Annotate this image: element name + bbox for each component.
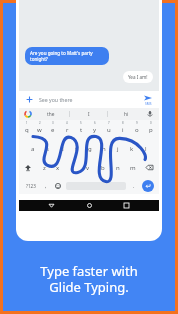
button[interactable]: f — [69, 139, 83, 158]
button[interactable]: 7 — [102, 120, 116, 139]
staticText: t — [80, 126, 83, 134]
button[interactable]: Add attachment — [24, 94, 35, 105]
staticText: 7 — [108, 121, 110, 125]
button[interactable]: Home — [84, 200, 95, 211]
button[interactable]: n — [110, 158, 125, 177]
staticText: See you there — [39, 96, 73, 103]
button[interactable]: h — [97, 139, 111, 158]
button[interactable]: . — [128, 177, 140, 194]
button[interactable]: Voice input — [145, 109, 155, 119]
button[interactable]: Emoji — [52, 177, 64, 194]
staticText: l — [145, 145, 147, 153]
button[interactable]: c — [65, 158, 80, 177]
button[interactable]: g — [83, 139, 97, 158]
button[interactable]: Google — [23, 109, 33, 119]
button[interactable]: I — [70, 108, 107, 120]
button[interactable]: hi — [108, 108, 145, 120]
button[interactable]: x — [51, 158, 65, 177]
button[interactable]: s — [40, 139, 55, 158]
button[interactable]: b — [95, 158, 110, 177]
staticText: . — [133, 182, 135, 189]
staticText: 5 — [80, 121, 82, 125]
button[interactable]: m — [125, 158, 140, 177]
staticText: d — [60, 145, 64, 153]
button[interactable]: 9 — [130, 120, 144, 139]
staticText: o — [135, 126, 139, 134]
staticText: , — [45, 182, 47, 189]
button[interactable]: k — [125, 139, 139, 158]
button[interactable]: 5 — [74, 120, 88, 139]
button[interactable]: 6 — [88, 120, 102, 139]
staticText: j — [117, 145, 119, 153]
button[interactable]: a — [25, 139, 40, 158]
staticText: w — [37, 126, 42, 134]
staticText: s — [46, 145, 49, 153]
staticText: 8 — [122, 121, 124, 125]
staticText: x — [56, 164, 60, 172]
button[interactable]: 8 — [116, 120, 130, 139]
button[interactable]: 3 — [46, 120, 60, 139]
button[interactable]: Send SMS — [142, 92, 154, 108]
staticText: r — [66, 126, 69, 134]
staticText: c — [71, 164, 74, 172]
staticText: Type faster with Glide Typing. — [40, 262, 138, 295]
staticText: i — [122, 126, 124, 134]
staticText: k — [130, 145, 134, 153]
staticText: I — [88, 111, 90, 118]
button[interactable]: 0 — [144, 120, 158, 139]
button[interactable]: Enter — [140, 177, 156, 194]
button[interactable]: ?123 — [22, 177, 40, 194]
staticText: hi — [124, 111, 129, 118]
button[interactable]: , — [40, 177, 52, 194]
button[interactable]: 1 — [20, 120, 33, 139]
staticText: Are you going to Matt's party tonight? — [30, 50, 104, 62]
button[interactable]: l — [139, 139, 153, 158]
staticText: 9 — [136, 121, 138, 125]
button[interactable]: z — [37, 158, 51, 177]
button[interactable]: j — [111, 139, 125, 158]
staticText: 4 — [66, 121, 68, 125]
staticText: n — [116, 164, 120, 172]
staticText: u — [107, 126, 111, 134]
staticText: 6 — [94, 121, 96, 125]
button[interactable]: Space — [66, 182, 126, 190]
staticText: f — [75, 145, 78, 153]
button[interactable]: 2 — [33, 120, 46, 139]
button[interactable]: Shift — [19, 158, 37, 177]
staticText: 2 — [39, 121, 41, 125]
staticText: e — [51, 126, 55, 134]
button[interactable]: 4 — [60, 120, 74, 139]
staticText: h — [102, 145, 106, 153]
staticText: q — [25, 126, 29, 134]
button[interactable]: the — [33, 108, 69, 120]
button[interactable]: Back — [46, 200, 57, 211]
staticText: Yea I am! — [128, 74, 148, 80]
staticText: g — [88, 145, 92, 153]
staticText: 0 — [150, 121, 152, 125]
staticText: p — [149, 126, 153, 134]
staticText: 1 — [26, 121, 28, 125]
staticText: y — [93, 126, 97, 134]
button[interactable]: Recents — [121, 200, 132, 211]
button[interactable]: v — [80, 158, 95, 177]
staticText: z — [43, 164, 46, 172]
staticText: m — [130, 164, 136, 172]
staticText: the — [47, 111, 55, 118]
staticText: 3 — [52, 121, 54, 125]
button[interactable]: Are you going to Matt's party tonight? — [25, 47, 109, 65]
staticText: b — [101, 164, 105, 172]
staticText: ?123 — [26, 183, 36, 189]
staticText: SMS — [145, 102, 152, 106]
staticText: a — [31, 145, 35, 153]
button[interactable]: d — [55, 139, 69, 158]
button[interactable]: Backspace — [140, 158, 159, 177]
button[interactable]: Yea I am! — [123, 71, 153, 83]
staticText: v — [86, 164, 90, 172]
